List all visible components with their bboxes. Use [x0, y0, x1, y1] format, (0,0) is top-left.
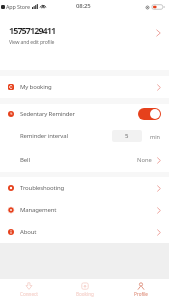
- staticText: 15757129411: [9, 24, 56, 36]
- staticText: 5: [125, 132, 129, 140]
- button[interactable]: My booking: [0, 76, 169, 98]
- button[interactable]: Sedentary Reminder: [0, 104, 169, 124]
- button[interactable]: Profile: [113, 279, 169, 300]
- button[interactable]: 5: [112, 130, 142, 142]
- button[interactable]: Reminder interval: [0, 124, 169, 148]
- staticText: About: [20, 228, 37, 236]
- staticText: App Store: [6, 3, 30, 10]
- staticText: View and edit profile: [9, 39, 55, 46]
- button[interactable]: Troubleshooting: [0, 177, 169, 199]
- button[interactable]: Management: [0, 199, 169, 221]
- staticText: Booking: [76, 291, 94, 297]
- staticText: Management: [20, 206, 57, 214]
- staticText: None: [137, 156, 152, 164]
- button[interactable]: 15757129411: [0, 13, 169, 70]
- button[interactable]: About: [0, 221, 169, 243]
- staticText: Bell: [20, 156, 30, 164]
- button[interactable]: Connect: [0, 279, 57, 300]
- button[interactable]: Bell: [0, 148, 169, 172]
- staticText: My booking: [20, 83, 52, 91]
- staticText: Connect: [20, 291, 38, 297]
- button[interactable]: Booking: [57, 279, 113, 300]
- staticText: Sedentary Reminder: [20, 110, 75, 118]
- staticText: 08:25: [76, 2, 91, 10]
- staticText: Reminder interval: [20, 132, 68, 140]
- button[interactable]: Sedentary reminder toggle, on: [138, 108, 161, 120]
- staticText: Troubleshooting: [20, 184, 65, 192]
- staticText: Profile: [134, 291, 148, 297]
- staticText: min: [150, 133, 160, 140]
